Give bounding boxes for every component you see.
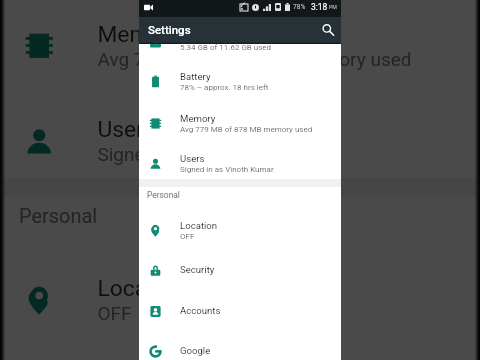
- staticText: Avg 779 MB of 878 MB memory used: [180, 125, 313, 134]
- button[interactable]: Memory: [0, 0, 480, 92]
- staticText: Location: [180, 220, 218, 231]
- button[interactable]: Storage: [139, 20, 341, 61]
- staticText: Signed in as Vinoth Kumar: [180, 165, 274, 174]
- staticText: 78%: [293, 3, 306, 11]
- staticText: Personal: [147, 190, 180, 200]
- staticText: OFF: [180, 232, 195, 241]
- staticText: Users: [180, 153, 205, 164]
- button[interactable]: Google: [139, 330, 341, 360]
- button[interactable]: Users: [139, 142, 341, 183]
- staticText: 78% – approx. 18 hrs left: [180, 83, 269, 92]
- staticText: 5.34 GB of 11.62 GB used: [180, 43, 272, 52]
- staticText: Signed in as Vinoth Kumar: [97, 144, 321, 166]
- staticText: Users: [97, 116, 157, 142]
- button[interactable]: Accounts: [139, 290, 341, 331]
- button[interactable]: Memory: [139, 102, 341, 143]
- staticText: Memory: [180, 113, 216, 124]
- staticText: Location: [97, 275, 188, 301]
- staticText: Avg 779 MB of 878 MB memory used: [97, 49, 413, 71]
- staticText: 3:18: [311, 2, 328, 12]
- button[interactable]: Location: [139, 209, 341, 250]
- staticText: PM: [329, 4, 337, 10]
- button[interactable]: Location: [0, 249, 480, 346]
- button[interactable]: Search: [315, 18, 341, 44]
- staticText: Battery: [180, 71, 211, 82]
- staticText: Accounts: [180, 305, 221, 316]
- staticText: Storage: [180, 31, 213, 42]
- button[interactable]: Battery: [139, 60, 341, 101]
- staticText: Memory: [97, 21, 183, 47]
- staticText: Personal: [19, 204, 97, 228]
- button[interactable]: Security: [139, 249, 341, 290]
- button[interactable]: Security: [0, 344, 480, 360]
- staticText: OFF: [97, 304, 133, 325]
- button[interactable]: Users: [0, 90, 480, 187]
- staticText: Google: [180, 345, 211, 356]
- staticText: Settings: [148, 23, 191, 36]
- staticText: Security: [180, 264, 215, 275]
